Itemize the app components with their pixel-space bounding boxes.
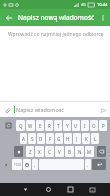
- staticText: Napisz nową wiadomość: [18, 13, 96, 22]
- button[interactable]: Home: [37, 183, 59, 196]
- button[interactable]: L: [91, 133, 99, 144]
- button[interactable]: Attach: [0, 103, 14, 117]
- button[interactable]: R: [45, 120, 53, 131]
- button[interactable]: F: [46, 133, 54, 144]
- button[interactable]: D: [37, 133, 45, 144]
- staticText: 10:44: [97, 2, 108, 7]
- staticText: R: [48, 123, 51, 129]
- button[interactable]: P: [99, 120, 107, 131]
- staticText: D: [39, 136, 43, 142]
- button[interactable]: .: [85, 159, 91, 170]
- staticText: O: [92, 123, 96, 129]
- staticText: U: [74, 123, 78, 129]
- button[interactable]: Switch keyboard: [81, 183, 103, 196]
- staticText: V: [58, 149, 61, 155]
- button[interactable]: V: [55, 146, 64, 157]
- button[interactable]: Recents: [59, 183, 81, 196]
- button[interactable]: M: [85, 146, 94, 157]
- button[interactable]: Send: [96, 103, 110, 117]
- staticText: Z: [29, 149, 32, 155]
- staticText: Y: [66, 123, 69, 129]
- staticText: J: [76, 136, 78, 142]
- staticText: G: [57, 136, 61, 142]
- button[interactable]: C: [45, 146, 54, 157]
- staticText: H: [66, 136, 70, 142]
- staticText: L: [94, 136, 97, 142]
- staticText: M: [87, 149, 92, 155]
- staticText: P: [102, 123, 105, 129]
- button[interactable]: T: [54, 120, 62, 131]
- staticText: A: [22, 136, 25, 142]
- button[interactable]: Previous: [1, 159, 11, 170]
- staticText: S: [31, 136, 34, 142]
- button[interactable]: Y: [63, 120, 71, 131]
- button[interactable]: ,: [32, 159, 38, 170]
- button[interactable]: I: [81, 120, 89, 131]
- staticText: K: [85, 136, 88, 142]
- button[interactable]: X: [35, 146, 44, 157]
- button[interactable]: Clipboard: [1, 120, 15, 131]
- staticText: ,: [34, 162, 36, 168]
- staticText: Wprowadź co najmniej jednego odbiorcę: [8, 31, 104, 38]
- button[interactable]: N: [75, 146, 84, 157]
- button[interactable]: B: [65, 146, 74, 157]
- staticText: ?123: [14, 163, 21, 167]
- button[interactable]: emoji: [23, 159, 31, 170]
- button[interactable]: O: [90, 120, 98, 131]
- button[interactable]: More options: [96, 11, 110, 25]
- button[interactable]: shift: [14, 146, 23, 157]
- button[interactable]: S: [28, 133, 36, 144]
- button[interactable]: ?123: [12, 159, 22, 170]
- staticText: 4G: [81, 2, 86, 7]
- button[interactable]: H: [64, 133, 72, 144]
- button[interactable]: U: [72, 120, 80, 131]
- button[interactable]: enter: [92, 159, 106, 170]
- staticText: C: [48, 149, 51, 155]
- staticText: N: [78, 149, 82, 155]
- staticText: E: [39, 123, 42, 129]
- staticText: X: [38, 149, 41, 155]
- staticText: B: [68, 149, 71, 155]
- button[interactable]: A: [20, 133, 27, 144]
- staticText: I: [84, 123, 86, 129]
- button[interactable]: Z: [26, 146, 34, 157]
- staticText: F: [49, 136, 52, 142]
- button[interactable]: back: [97, 146, 106, 157]
- staticText: Napisz wiadomość: [16, 106, 64, 113]
- button[interactable]: E: [36, 120, 44, 131]
- button[interactable]: J: [73, 133, 81, 144]
- button[interactable]: W: [26, 120, 35, 131]
- button[interactable]: G: [55, 133, 63, 144]
- button[interactable]: Back: [14, 183, 37, 196]
- button[interactable]: K: [82, 133, 90, 144]
- staticText: .: [87, 162, 89, 168]
- staticText: Q: [19, 123, 23, 129]
- staticText: W: [28, 123, 33, 129]
- staticText: T: [57, 123, 60, 129]
- button[interactable]: Back: [0, 9, 17, 26]
- button[interactable]: Q: [16, 120, 25, 131]
